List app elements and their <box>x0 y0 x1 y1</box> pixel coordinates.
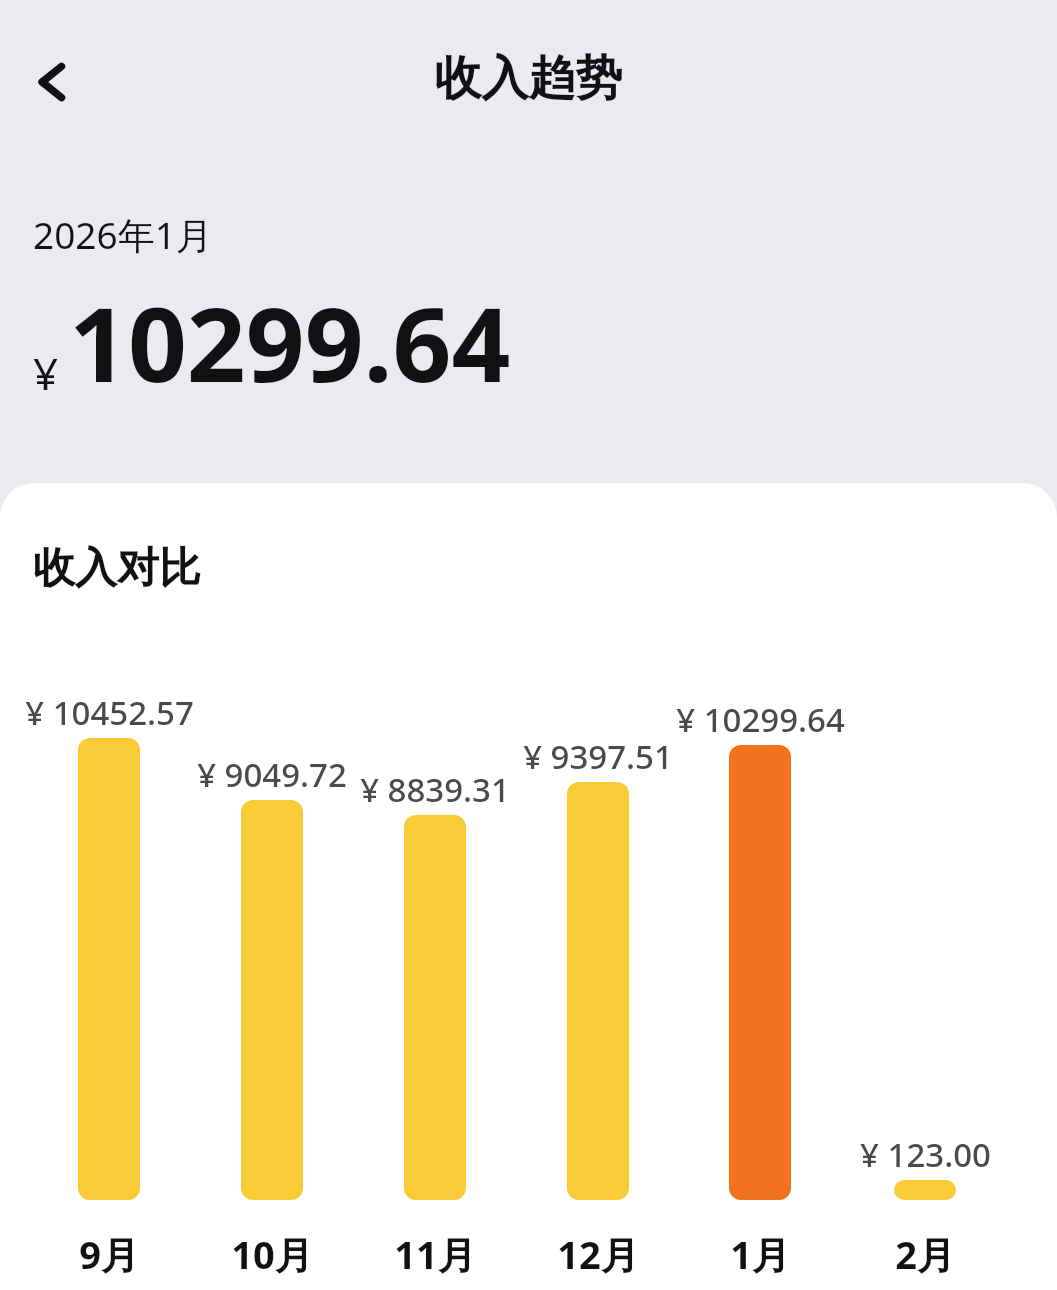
button[interactable] <box>894 1180 956 1200</box>
staticText: 10月 <box>231 1228 313 1280</box>
staticText: ¥ <box>33 343 59 403</box>
button[interactable] <box>78 738 140 1200</box>
staticText: ¥ 123.00 <box>860 1132 991 1177</box>
staticText: 1月 <box>730 1228 790 1280</box>
button[interactable] <box>241 800 303 1200</box>
button[interactable]: Back <box>14 40 98 124</box>
staticText: ¥ 8839.31 <box>360 767 510 812</box>
staticText: 收入趋势 <box>0 49 1057 108</box>
staticText: 2026年1月 <box>33 209 213 260</box>
staticText: 收入对比 <box>33 542 201 595</box>
staticText: 11月 <box>394 1228 476 1280</box>
button[interactable] <box>404 815 466 1200</box>
staticText: ¥ 10299.64 <box>676 697 845 742</box>
staticText: ¥ 10452.57 <box>25 690 194 735</box>
staticText: ¥ 9049.72 <box>197 752 347 797</box>
staticText: 2月 <box>895 1228 955 1280</box>
button[interactable] <box>567 782 629 1200</box>
button[interactable] <box>729 745 791 1200</box>
staticText: 10299.64 <box>69 272 511 412</box>
staticText: 12月 <box>557 1228 639 1280</box>
staticText: 9月 <box>79 1228 139 1280</box>
staticText: ¥ 9397.51 <box>523 734 673 779</box>
